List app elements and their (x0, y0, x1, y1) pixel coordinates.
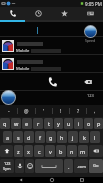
button[interactable]: i (74, 118, 83, 129)
button[interactable]: c (34, 145, 44, 157)
button[interactable]: Mobile (0, 37, 103, 54)
button[interactable]: g (46, 131, 56, 143)
button[interactable]: . (64, 159, 73, 173)
staticText: z (17, 148, 20, 155)
button[interactable]: Symbols (0, 159, 14, 173)
staticText: c (38, 148, 41, 155)
button[interactable]: @ (18, 105, 35, 117)
staticText: m (80, 148, 86, 155)
button[interactable]: h (57, 131, 67, 143)
staticText: f (39, 134, 41, 141)
button[interactable]: o (84, 118, 93, 129)
staticText: x (27, 148, 30, 155)
button[interactable]: q (0, 118, 10, 129)
button[interactable]: a (3, 131, 12, 143)
staticText: 123 (87, 93, 94, 98)
staticText: ' (43, 108, 45, 115)
staticText: Sym (3, 166, 11, 171)
staticText: i (78, 120, 80, 127)
staticText: u (67, 120, 71, 127)
button[interactable]: x (24, 145, 33, 157)
staticText: y (57, 120, 60, 127)
button[interactable]: m (78, 145, 88, 157)
staticText: q (3, 120, 7, 127)
button[interactable]: Space (35, 159, 63, 173)
button[interactable]: Call log (25, 7, 51, 22)
staticText: o (87, 120, 91, 127)
staticText: . (68, 163, 70, 170)
button[interactable]: k (79, 131, 89, 143)
button[interactable]: ? (70, 105, 86, 117)
staticText: ? (77, 108, 80, 115)
button[interactable]: f (35, 131, 45, 143)
staticText: b (59, 148, 63, 155)
button[interactable]: Go (89, 159, 103, 173)
button[interactable]: Speed dial (84, 25, 97, 43)
staticText: 9:05 PM (85, 1, 102, 7)
button[interactable]: e (22, 118, 32, 129)
button[interactable]: v (45, 145, 55, 157)
button[interactable]: Backspace (89, 145, 103, 157)
staticText: w (14, 120, 19, 127)
staticText: 123 (4, 161, 11, 166)
staticText: d (27, 134, 31, 141)
button[interactable]: Delete (81, 75, 95, 89)
button[interactable]: ! (53, 105, 69, 117)
button[interactable]: Home (42, 177, 62, 183)
button[interactable]: w (11, 118, 21, 129)
staticText: .com (77, 164, 86, 169)
button[interactable]: d (24, 131, 34, 143)
button[interactable]: - (0, 105, 17, 117)
button[interactable]: , (87, 105, 103, 117)
staticText: Mobile (16, 48, 30, 54)
button[interactable]: z (14, 145, 23, 157)
button[interactable]: Voice input (15, 159, 24, 173)
staticText: n (70, 148, 74, 155)
staticText: p (97, 120, 101, 127)
button[interactable]: Call (39, 73, 65, 90)
button[interactable]: j (68, 131, 78, 143)
staticText: Go (93, 163, 99, 169)
staticText: t (48, 120, 50, 127)
staticText: @ (24, 108, 29, 115)
button[interactable]: Emoji (25, 159, 34, 173)
staticText: h (60, 134, 64, 141)
staticText: a (6, 134, 10, 141)
button[interactable]: Favorites (51, 7, 77, 22)
staticText: k (83, 134, 86, 141)
staticText: r (37, 120, 40, 127)
button[interactable]: p (94, 118, 103, 129)
button[interactable]: Contacts (77, 7, 103, 22)
staticText: Mobile (16, 66, 30, 72)
button[interactable]: .com (74, 159, 88, 173)
button[interactable]: l (90, 131, 100, 143)
button[interactable]: t (44, 118, 53, 129)
staticText: , (94, 108, 96, 115)
button[interactable]: y (54, 118, 63, 129)
button[interactable]: Back (11, 177, 31, 183)
button[interactable]: r (33, 118, 43, 129)
button[interactable]: n (67, 145, 77, 157)
staticText: e (25, 120, 29, 127)
button[interactable]: Shift (0, 145, 13, 157)
staticText: Speed (85, 38, 96, 43)
staticText: ! (60, 108, 62, 115)
staticText: v (49, 148, 52, 155)
button[interactable]: ' (36, 105, 52, 117)
button[interactable]: Phone (0, 7, 25, 22)
staticText: s (17, 134, 20, 141)
button[interactable]: b (56, 145, 66, 157)
button[interactable]: Mobile (0, 55, 103, 72)
button[interactable]: Recents (72, 177, 92, 183)
staticText: j (72, 134, 74, 141)
staticText: g (49, 134, 53, 141)
staticText: - (8, 108, 10, 115)
staticText: l (94, 134, 96, 141)
button[interactable]: u (64, 118, 73, 129)
button[interactable]: s (13, 131, 23, 143)
